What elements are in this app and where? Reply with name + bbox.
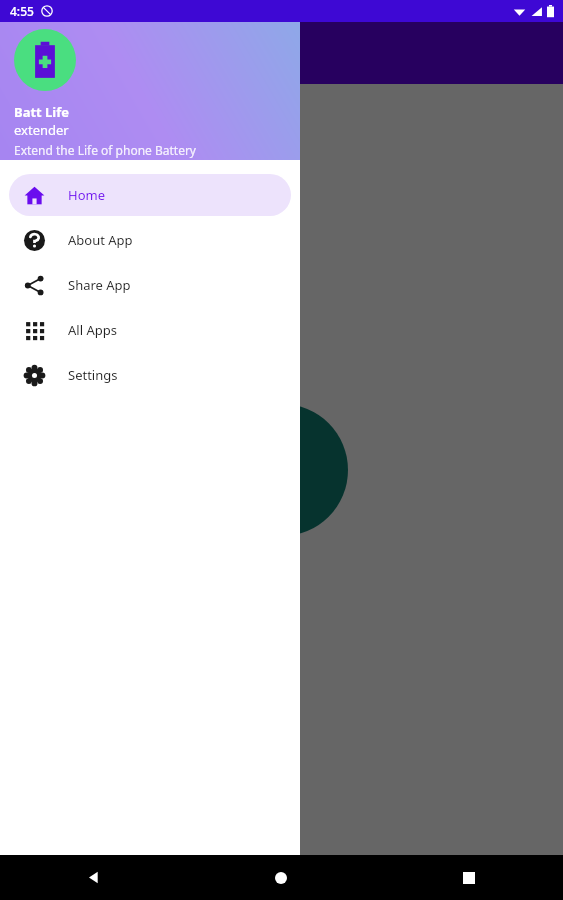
- button[interactable]: [0, 22, 563, 855]
- button[interactable]: Share App: [9, 264, 291, 306]
- staticText: Extend the Life of phone Battery: [14, 142, 196, 158]
- staticText: All Apps: [68, 321, 117, 339]
- staticText: 4:55: [10, 3, 34, 19]
- staticText: Share App: [68, 276, 131, 294]
- button[interactable]: Start detector: [216, 404, 348, 536]
- button[interactable]: Home: [187, 855, 375, 900]
- staticText: Batt Life: [14, 103, 70, 121]
- button[interactable]: Recent apps: [375, 855, 563, 900]
- button[interactable]: Home: [9, 174, 291, 216]
- staticText: About App: [68, 231, 133, 249]
- button[interactable]: Back: [0, 855, 187, 900]
- staticText: Settings: [68, 366, 118, 384]
- staticText: Home: [68, 186, 105, 204]
- staticText: Press the button to start / stop the cha…: [24, 106, 218, 186]
- button[interactable]: All Apps: [9, 309, 291, 351]
- button[interactable]: Settings: [9, 354, 291, 396]
- button[interactable]: About App: [9, 219, 291, 261]
- staticText: extender: [14, 121, 69, 139]
